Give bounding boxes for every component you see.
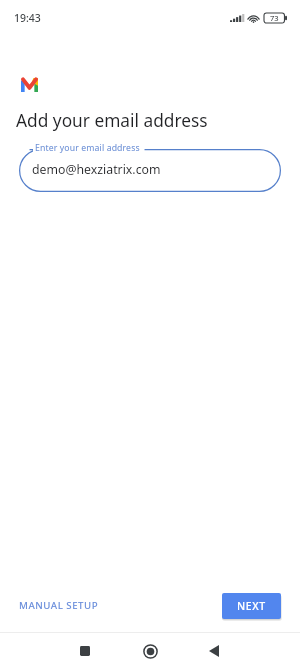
- staticText: NEXT: [237, 599, 266, 613]
- staticText: Add your email address: [16, 109, 208, 133]
- button[interactable]: MANUAL SETUP: [13, 593, 105, 618]
- staticText: 73: [270, 13, 279, 23]
- staticText: demo@hexziatrix.com: [32, 161, 161, 178]
- staticText: Enter your email address: [35, 142, 140, 154]
- button[interactable]: Back: [197, 634, 231, 668]
- button[interactable]: NEXT: [222, 593, 281, 619]
- staticText: MANUAL SETUP: [19, 599, 99, 612]
- staticText: 19:43: [14, 11, 41, 25]
- button[interactable]: Recent apps: [68, 634, 102, 668]
- button[interactable]: Home: [133, 634, 167, 668]
